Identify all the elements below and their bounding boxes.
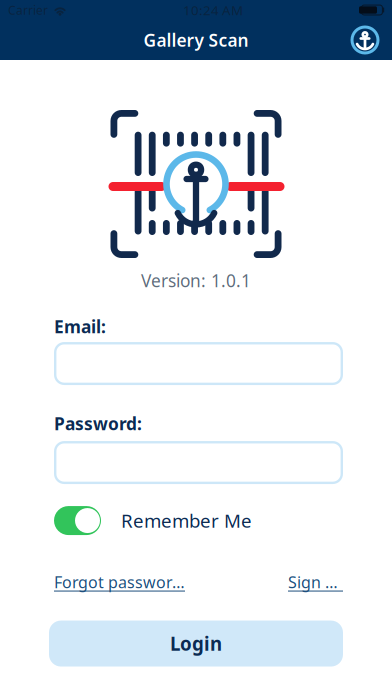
staticText: Remember Me bbox=[121, 508, 252, 533]
button[interactable]: Forgot password? bbox=[54, 574, 185, 592]
staticText: Forgot password? bbox=[54, 571, 185, 593]
staticText: Password: bbox=[54, 412, 142, 435]
staticText: Version: 1.0.1 bbox=[141, 269, 251, 292]
staticText: 10:24 AM bbox=[183, 1, 243, 19]
staticText: Carrier bbox=[8, 2, 48, 18]
button[interactable]: Login bbox=[49, 621, 343, 667]
staticText: Gallery Scan bbox=[143, 28, 248, 51]
button[interactable]: Account bbox=[350, 25, 392, 55]
staticText: Sign up bbox=[288, 571, 343, 593]
staticText: Login bbox=[170, 631, 222, 656]
button[interactable]: Remember Me bbox=[54, 506, 343, 535]
staticText: Email: bbox=[54, 315, 106, 338]
button[interactable]: Sign up bbox=[288, 574, 343, 592]
